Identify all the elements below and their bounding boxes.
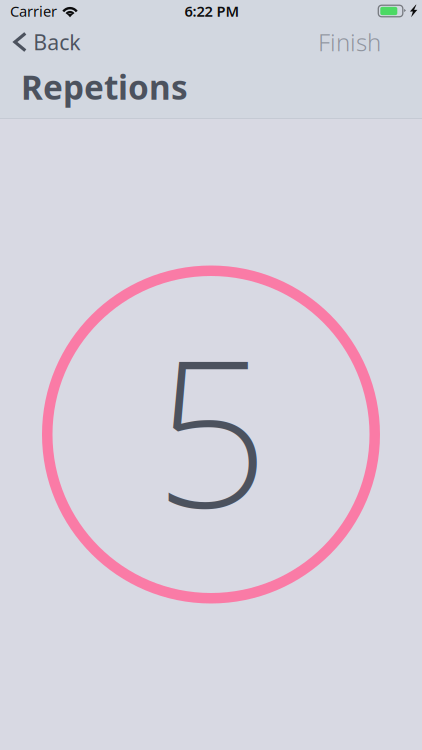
staticText: Finish (318, 26, 381, 58)
button[interactable]: Repetitions remaining, 5. Tap to count (42, 265, 380, 603)
staticText: 5 (154, 294, 270, 563)
button[interactable]: Back (0, 25, 80, 59)
staticText: Carrier (10, 1, 57, 21)
button[interactable]: Finish (307, 22, 392, 62)
staticText: Back (33, 28, 80, 56)
staticText: 6:22 PM (184, 1, 239, 21)
staticText: Repetions (21, 65, 188, 109)
